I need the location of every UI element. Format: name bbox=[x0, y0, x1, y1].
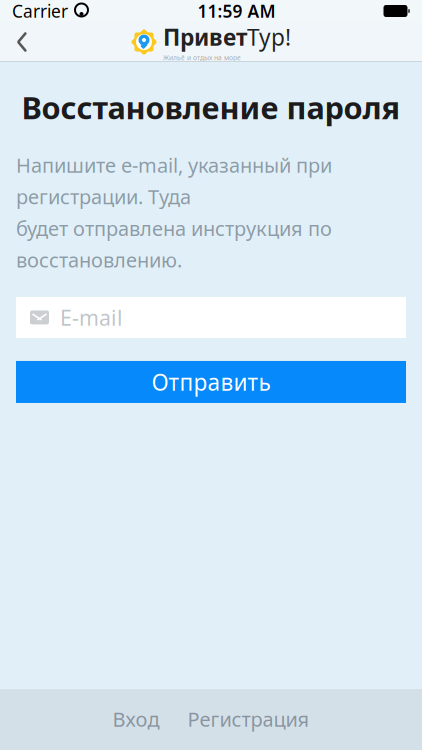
button[interactable]: Регистрация bbox=[173, 694, 323, 744]
staticText: Тур! bbox=[247, 22, 291, 52]
button[interactable]: E-mail bbox=[16, 297, 406, 338]
staticText: Отправить bbox=[151, 367, 270, 397]
staticText: Регистрация bbox=[187, 706, 309, 732]
staticText: Carrier bbox=[12, 0, 68, 22]
button[interactable]: Отправить bbox=[16, 361, 406, 403]
button[interactable]: Back bbox=[0, 22, 44, 62]
staticText: Восстановление пароля bbox=[21, 87, 400, 128]
button[interactable]: Вход bbox=[98, 694, 173, 744]
staticText: Напишите e-mail, указанный при регистрац… bbox=[16, 152, 332, 273]
staticText: E-mail bbox=[60, 303, 123, 332]
staticText: 11:59 AM bbox=[197, 0, 275, 22]
staticText: Жильё и отдых на море bbox=[163, 53, 241, 62]
staticText: Вход bbox=[112, 706, 159, 732]
staticText: Привет bbox=[163, 22, 247, 52]
